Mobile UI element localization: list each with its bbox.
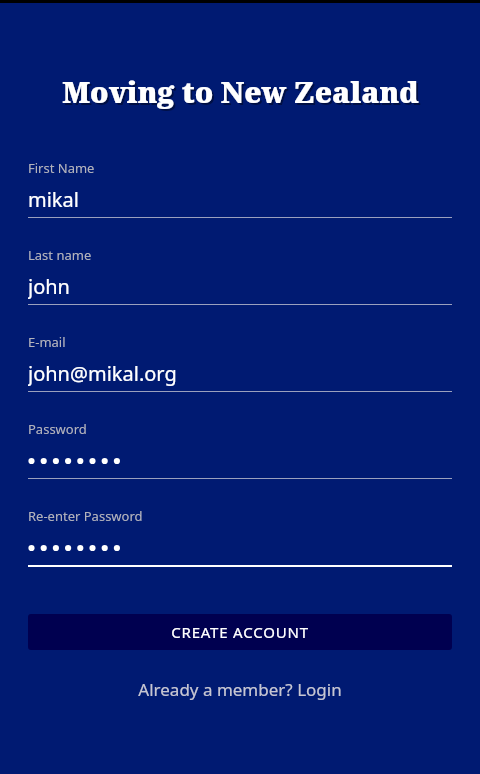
staticText: Moving to New Zealand (62, 72, 419, 111)
staticText: mikal (28, 186, 79, 212)
staticText: Moving to New Zealand (64, 74, 421, 113)
staticText: john@mikal.org (28, 360, 177, 386)
staticText: CREATE ACCOUNT (171, 622, 309, 642)
staticText: Password (28, 420, 87, 438)
button[interactable]: CREATE ACCOUNT (28, 614, 452, 650)
button[interactable]: Last name (28, 246, 452, 305)
button[interactable]: Re-enter Password (28, 507, 452, 567)
staticText: E-mail (28, 333, 66, 351)
button[interactable]: Password (28, 420, 452, 479)
button[interactable]: First Name (28, 159, 452, 218)
staticText: Re-enter Password (28, 507, 143, 525)
staticText: john (28, 273, 70, 299)
button[interactable]: E-mail (28, 333, 452, 392)
staticText: Last name (28, 246, 92, 264)
staticText: Already a member? Login (138, 678, 342, 701)
staticText: First Name (28, 159, 95, 177)
button[interactable]: Already a member? Login (130, 674, 350, 705)
